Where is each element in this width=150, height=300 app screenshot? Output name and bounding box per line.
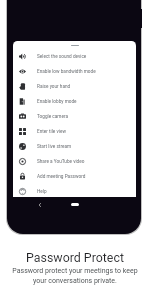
staticText: Raise your hand — [37, 84, 71, 90]
staticText: Add meeting Password — [37, 174, 86, 180]
staticText: Enable lobby mode — [37, 99, 77, 105]
button[interactable]: Help — [13, 184, 136, 197]
staticText: Enter tile view — [37, 129, 66, 135]
staticText: Enable low bandwidth mode — [37, 69, 96, 75]
button[interactable]: Enable lobby mode — [13, 94, 136, 109]
button[interactable]: Start live stream — [13, 139, 136, 154]
staticText: Start live stream — [37, 144, 72, 150]
button[interactable]: Home — [71, 203, 79, 206]
staticText: Select the sound device — [37, 54, 87, 60]
button[interactable]: Select the sound device — [13, 49, 136, 64]
button[interactable]: Raise your hand — [13, 79, 136, 94]
button[interactable]: Share a YouTube video — [13, 154, 136, 169]
button[interactable]: Add meeting Password — [13, 169, 136, 184]
button[interactable]: Toggle camera — [13, 109, 136, 124]
button[interactable]: Back — [35, 200, 45, 210]
button[interactable]: Enter tile view — [13, 124, 136, 139]
staticText: Help — [37, 189, 47, 195]
staticText: Share a YouTube video — [37, 159, 85, 165]
button[interactable]: Enable low bandwidth mode — [13, 64, 136, 79]
staticText: Toggle camera — [37, 114, 68, 120]
staticText: Password protect your meetings to keep y… — [0, 267, 150, 284]
staticText: Password Protect — [0, 250, 150, 265]
